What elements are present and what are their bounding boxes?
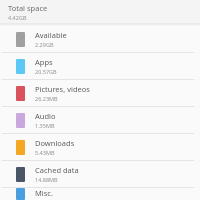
staticText: Available <box>35 30 67 40</box>
staticText: 20.57GB <box>35 68 57 75</box>
staticText: Pictures, videos <box>35 84 90 94</box>
button[interactable]: Downloads <box>0 134 200 160</box>
staticText: 14.88MB <box>35 176 58 183</box>
button[interactable]: Apps <box>0 53 200 79</box>
button[interactable]: Misc. <box>0 188 200 200</box>
button[interactable]: Cached data <box>0 161 200 187</box>
staticText: 5.43MB <box>35 149 55 156</box>
button[interactable]: Pictures, videos <box>0 80 200 106</box>
staticText: 2.29GB <box>35 41 54 48</box>
staticText: 4.42GB <box>8 14 27 21</box>
staticText: 1.35MB <box>35 122 55 129</box>
staticText: Cached data <box>35 165 79 175</box>
staticText: Apps <box>35 57 53 67</box>
staticText: Misc. <box>35 188 53 198</box>
staticText: 26.23MB <box>35 95 58 102</box>
button[interactable]: Audio <box>0 107 200 133</box>
staticText: Audio <box>35 111 56 121</box>
button[interactable]: Available <box>0 26 200 52</box>
staticText: Downloads <box>35 138 75 148</box>
staticText: Total space <box>8 3 48 13</box>
